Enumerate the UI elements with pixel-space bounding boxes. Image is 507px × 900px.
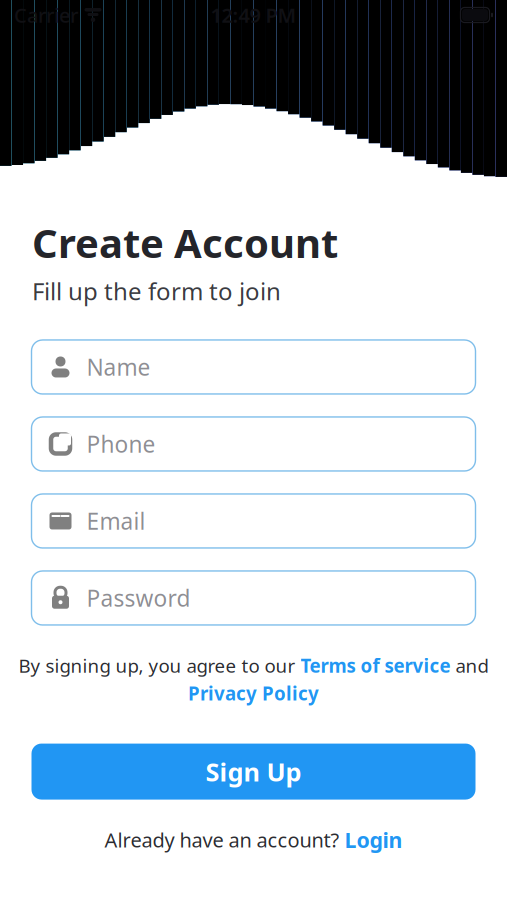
button[interactable]: Phone <box>31 417 475 471</box>
staticText: Create Account <box>32 216 338 269</box>
staticText: Email <box>86 506 145 536</box>
button[interactable]: Terms of service <box>300 653 450 678</box>
staticText: Already have an account? <box>104 826 344 853</box>
button[interactable]: Email <box>31 494 475 548</box>
staticText: By signing up, you agree to our <box>18 653 300 678</box>
staticText: Name <box>86 352 150 382</box>
staticText: Password <box>86 583 190 613</box>
button[interactable]: Login <box>344 826 402 854</box>
staticText: Phone <box>86 429 155 459</box>
button[interactable]: Privacy Policy <box>188 681 319 706</box>
staticText: Login <box>344 826 402 854</box>
staticText: Terms of service <box>300 653 450 678</box>
button[interactable]: Sign Up <box>31 744 475 800</box>
staticText: Privacy Policy <box>188 681 319 706</box>
staticText: and <box>450 653 488 678</box>
staticText: 12:49 PM <box>210 2 296 28</box>
button[interactable]: Password <box>31 571 475 625</box>
staticText: Fill up the form to join <box>32 275 281 307</box>
staticText: Sign Up <box>205 755 301 788</box>
staticText: Carrier <box>14 2 78 28</box>
button[interactable]: Name <box>31 340 475 394</box>
